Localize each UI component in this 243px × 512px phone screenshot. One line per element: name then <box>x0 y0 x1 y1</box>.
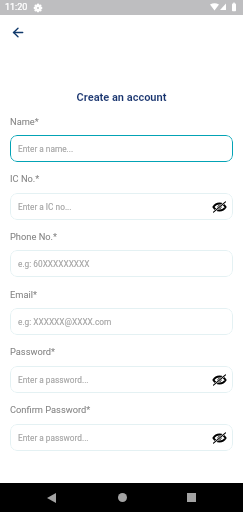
button[interactable]: Toggle password visibility <box>211 372 227 388</box>
button[interactable]: e.g: XXXXXX@XXXX.com <box>10 308 233 335</box>
staticText: Phone No.* <box>10 231 58 242</box>
staticText: Enter a password... <box>18 433 89 443</box>
staticText: Enter a name... <box>18 144 74 154</box>
staticText: Create an account <box>0 91 243 104</box>
staticText: Password* <box>10 346 56 357</box>
staticText: Enter a password... <box>18 375 89 385</box>
staticText: Email* <box>10 289 38 300</box>
staticText: e.g: 60XXXXXXXXX <box>18 259 90 269</box>
staticText: Confirm Password* <box>10 404 91 415</box>
button[interactable]: Toggle password visibility <box>211 430 227 446</box>
staticText: e.g: XXXXXX@XXXX.com <box>18 317 112 327</box>
button[interactable]: Toggle password visibility <box>211 199 227 215</box>
button[interactable]: Back <box>7 22 28 43</box>
button[interactable]: e.g: 60XXXXXXXXX <box>10 250 233 277</box>
staticText: Enter a IC no... <box>18 202 72 212</box>
button[interactable]: Enter a password... <box>10 424 233 451</box>
button[interactable]: Home <box>107 483 137 512</box>
staticText: IC No.* <box>10 173 40 184</box>
button[interactable]: Enter a name... <box>10 135 233 162</box>
staticText: Name* <box>10 116 39 127</box>
button[interactable]: Enter a password... <box>10 366 233 393</box>
button[interactable]: Enter a IC no... <box>10 193 233 220</box>
button[interactable]: Back <box>36 483 66 512</box>
staticText: 11:20 <box>5 2 28 13</box>
button[interactable]: Recent apps <box>176 483 206 512</box>
